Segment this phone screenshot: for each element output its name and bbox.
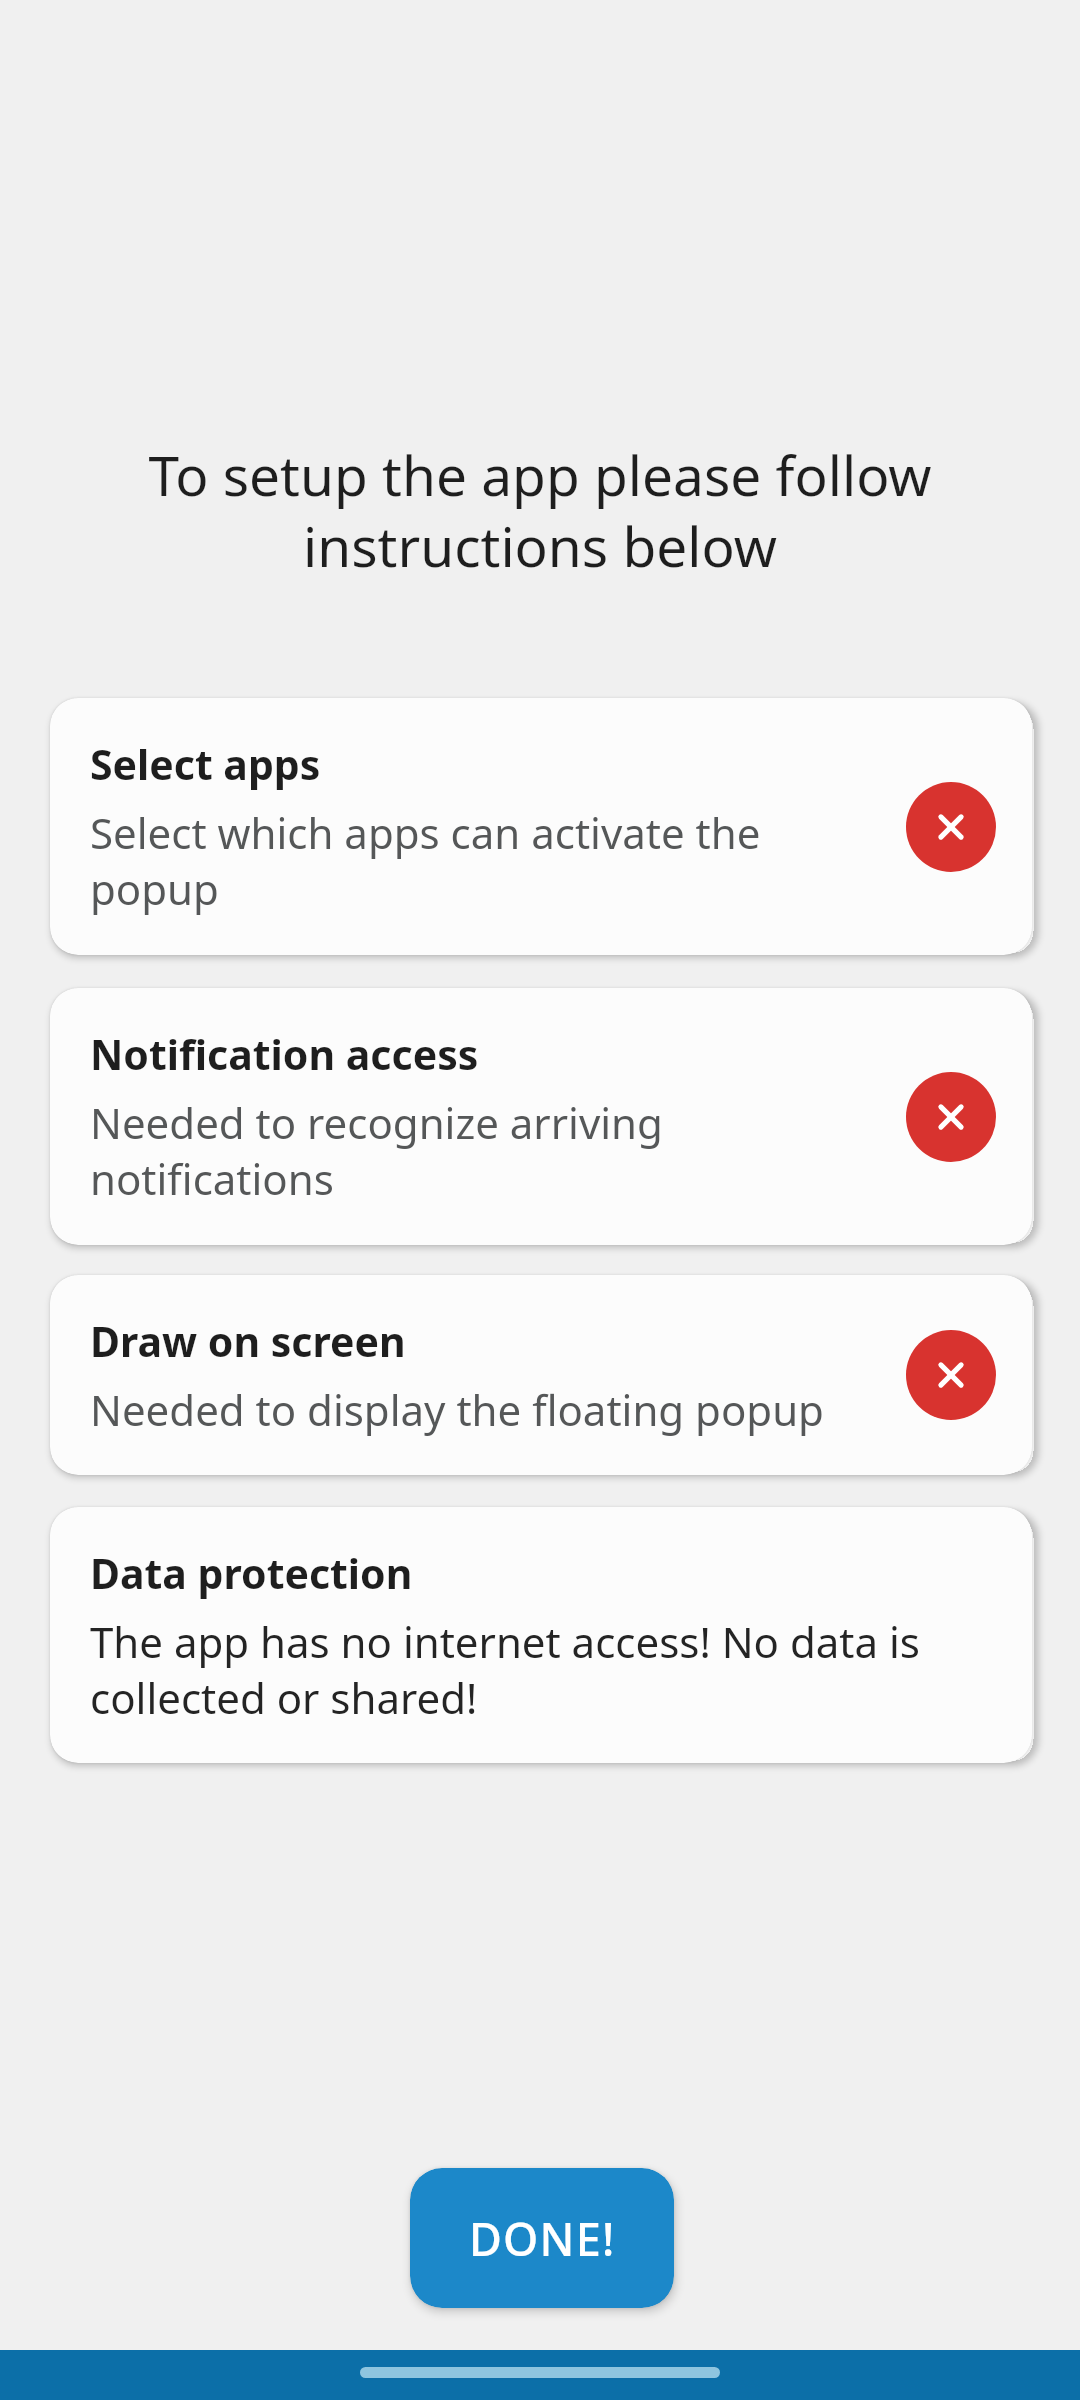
button[interactable]: Select apps — [50, 698, 1032, 955]
staticText: The app has no internet access! No data … — [90, 1613, 996, 1726]
button[interactable]: Permission not granted — [906, 1330, 996, 1420]
staticText: Data protection — [90, 1545, 413, 1601]
button[interactable]: Permission not granted — [906, 1072, 996, 1162]
button[interactable]: DONE! — [410, 2168, 674, 2308]
button[interactable]: Notification access — [50, 988, 1032, 1245]
button[interactable]: Draw on screen — [50, 1275, 1032, 1475]
staticText: Select which apps can activate the popup — [90, 804, 882, 917]
button[interactable]: Permission not granted — [906, 782, 996, 872]
staticText: DONE! — [469, 2208, 616, 2269]
staticText: Notification access — [90, 1026, 479, 1082]
staticText: To setup the app please follow instructi… — [40, 437, 1040, 583]
staticText: Needed to recognize arriving notificatio… — [90, 1094, 882, 1207]
button[interactable]: Data protection — [50, 1507, 1032, 1763]
staticText: Needed to display the floating popup — [90, 1381, 824, 1438]
staticText: Select apps — [90, 736, 321, 792]
staticText: Draw on screen — [90, 1313, 406, 1369]
